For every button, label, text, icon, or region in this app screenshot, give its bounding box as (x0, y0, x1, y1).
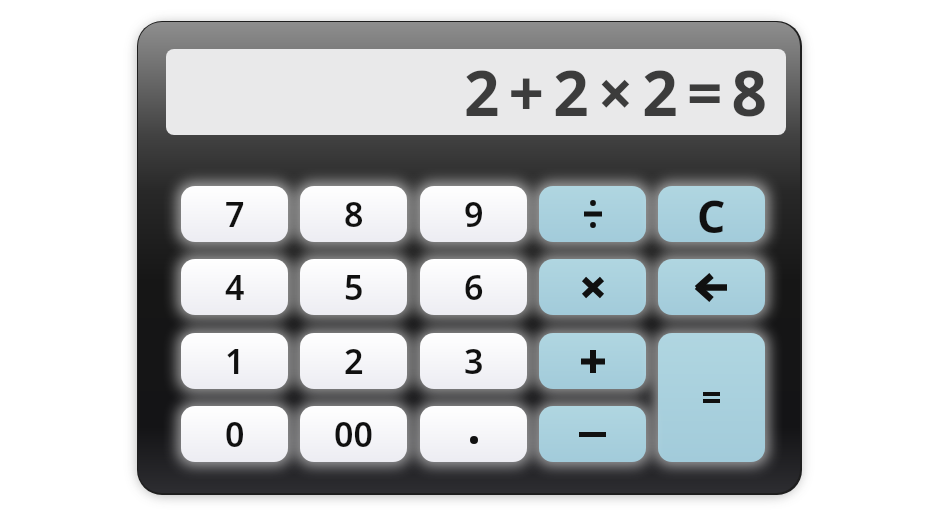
staticText: 0 (225, 411, 245, 457)
button[interactable] (658, 333, 765, 462)
button[interactable]: 2 (300, 333, 407, 389)
button[interactable] (420, 406, 527, 462)
button[interactable]: 3 (420, 333, 527, 389)
staticText: 2 (344, 338, 364, 384)
staticText: 6 (464, 264, 484, 310)
button[interactable]: 2 + 2 × 2 = 8 (166, 49, 786, 135)
button[interactable]: 5 (300, 259, 407, 315)
staticText: 4 (225, 264, 245, 310)
button[interactable]: 7 (181, 186, 288, 242)
staticText: 3 (464, 338, 484, 384)
button[interactable]: 1 (181, 333, 288, 389)
staticText: 1 (225, 338, 245, 384)
button[interactable] (539, 259, 646, 315)
staticText: 8 (344, 191, 364, 237)
button[interactable]: 9 (420, 186, 527, 242)
button[interactable] (539, 406, 646, 462)
staticText: 9 (464, 191, 484, 237)
button[interactable] (539, 186, 646, 242)
staticText: 2 + 2 × 2 = 8 (464, 50, 764, 134)
button[interactable]: 4 (181, 259, 288, 315)
button[interactable]: 00 (300, 406, 407, 462)
button[interactable] (539, 333, 646, 389)
button[interactable]: 0 (181, 406, 288, 462)
staticText: 5 (344, 264, 364, 310)
button[interactable] (658, 259, 765, 315)
button[interactable]: C (658, 186, 765, 242)
staticText: C (697, 186, 726, 242)
staticText: 00 (334, 411, 373, 457)
button[interactable]: 8 (300, 186, 407, 242)
staticText: 7 (225, 191, 245, 237)
button[interactable]: 6 (420, 259, 527, 315)
